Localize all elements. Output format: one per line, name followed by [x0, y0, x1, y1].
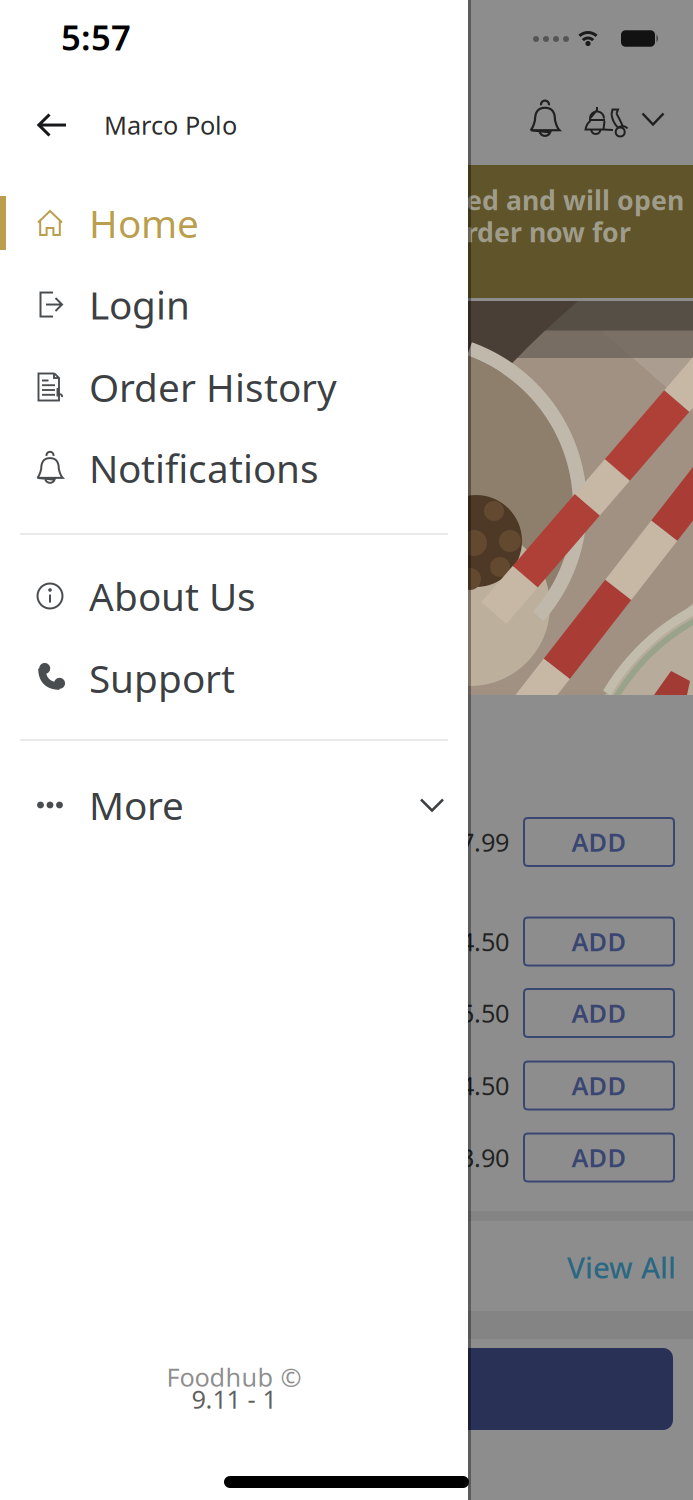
button[interactable]: Home [0, 191, 448, 255]
button[interactable]: More [0, 773, 448, 837]
staticText: ADD [571, 1069, 626, 1102]
button[interactable]: Support [0, 646, 448, 710]
staticText: Order History [89, 361, 337, 413]
staticText: 9.11 - 1 [191, 1382, 276, 1416]
staticText: About Us [89, 570, 256, 622]
staticText: View All [567, 1247, 676, 1286]
button[interactable]: Order History [0, 355, 448, 419]
button[interactable]: Delivery [579, 97, 629, 141]
button[interactable]: ADD [523, 1060, 675, 1110]
staticText: More [89, 779, 184, 831]
button[interactable]: ADD [523, 817, 675, 867]
button[interactable]: ADD [523, 988, 675, 1038]
button[interactable]: Notifications [523, 97, 567, 141]
staticText: 5.50 [460, 996, 509, 1030]
button[interactable]: Notifications [0, 436, 448, 500]
staticText: ADD [571, 1141, 626, 1174]
staticText: Notifications [89, 442, 319, 494]
staticText: Marco Polo [104, 108, 237, 142]
staticText: 4.50 [460, 1069, 509, 1102]
button[interactable]: View All [536, 1247, 676, 1287]
button[interactable]: View basket [428, 1348, 673, 1430]
button[interactable]: Back [26, 103, 78, 147]
staticText: ADD [571, 825, 626, 859]
button[interactable]: ADD [523, 1132, 675, 1182]
staticText: rder now for [466, 214, 631, 250]
button[interactable]: Switch restaurant [638, 104, 668, 134]
staticText: Login [89, 279, 190, 330]
staticText: 4.50 [460, 925, 509, 958]
staticText: ADD [571, 925, 626, 958]
staticText: 3.90 [460, 1141, 509, 1174]
staticText: Home [89, 197, 199, 249]
staticText: Foodhub © [166, 1360, 301, 1394]
staticText: 7.99 [460, 825, 509, 859]
button[interactable]: Login [0, 272, 448, 336]
button[interactable]: ADD [523, 916, 675, 966]
staticText: Support [89, 652, 235, 704]
staticText: ed and will open [466, 182, 684, 218]
button[interactable]: About Us [0, 564, 448, 628]
staticText: ADD [571, 996, 626, 1030]
staticText: 5:57 [61, 14, 131, 60]
